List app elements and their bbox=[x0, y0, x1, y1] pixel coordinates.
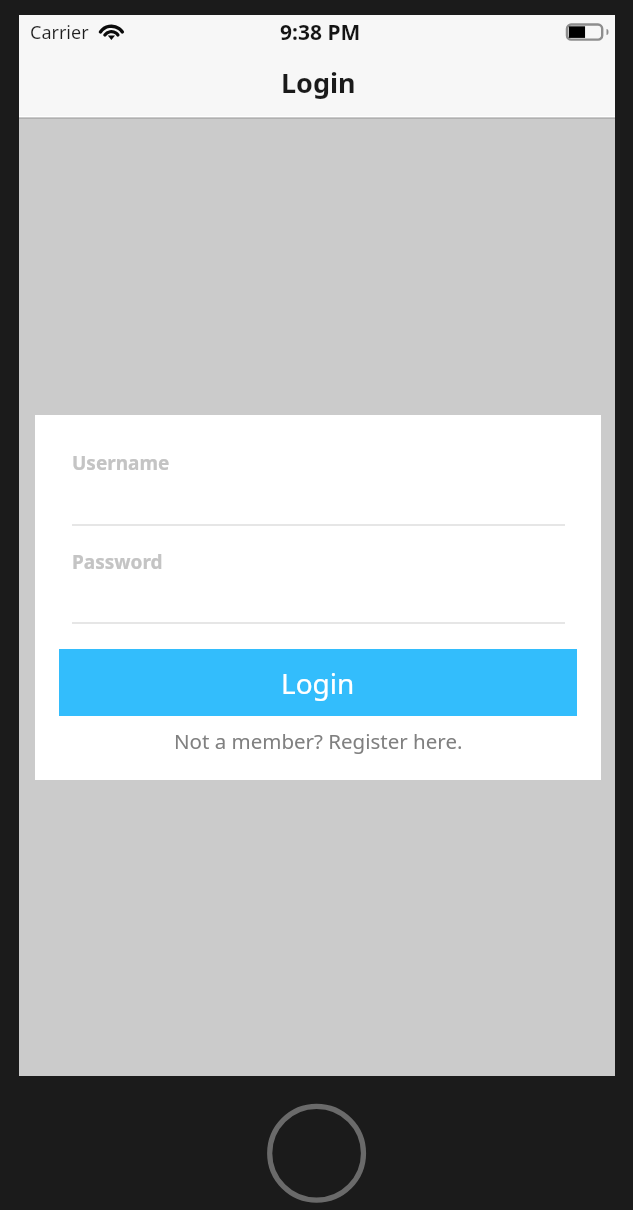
staticText: Username bbox=[72, 450, 170, 476]
button[interactable]: Username bbox=[72, 450, 565, 526]
other: Battery bbox=[564, 22, 612, 44]
staticText: 9:38 PM bbox=[280, 18, 361, 47]
other: Home bbox=[267, 1103, 367, 1203]
staticText: Carrier bbox=[30, 20, 89, 45]
staticText: Login bbox=[281, 64, 356, 101]
button[interactable]: Password bbox=[72, 549, 565, 624]
staticText: Not a member? Register here. bbox=[174, 727, 463, 755]
button[interactable]: Login bbox=[59, 649, 577, 716]
button[interactable]: Not a member? Register here. bbox=[35, 727, 601, 761]
staticText: Login bbox=[281, 664, 355, 702]
staticText: Password bbox=[72, 549, 163, 575]
other: Wi-Fi bbox=[100, 22, 125, 41]
